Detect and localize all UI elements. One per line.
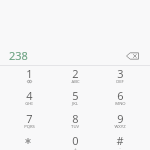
staticText: 3: [117, 66, 124, 81]
button[interactable]: 9: [97, 111, 143, 134]
staticText: DEF: [116, 79, 124, 85]
staticText: JKL: [72, 101, 78, 107]
button[interactable]: 2: [52, 66, 98, 89]
button[interactable]: 8: [52, 111, 98, 134]
button[interactable]: 7: [6, 111, 52, 134]
staticText: 5: [72, 88, 79, 103]
staticText: 8: [72, 111, 79, 126]
staticText: +: [74, 146, 77, 150]
staticText: 4: [26, 88, 33, 103]
staticText: ;: [119, 146, 121, 150]
staticText: 0: [72, 133, 79, 148]
staticText: #: [116, 133, 124, 148]
button[interactable]: #: [97, 133, 143, 150]
staticText: PQRS: [24, 124, 35, 130]
button[interactable]: 1: [6, 66, 52, 89]
staticText: GHI: [25, 101, 33, 107]
button[interactable]: 5: [52, 88, 98, 111]
button[interactable]: Backspace: [124, 48, 140, 64]
staticText: 238: [9, 48, 28, 63]
staticText: 2: [72, 66, 79, 81]
staticText: 1: [26, 66, 33, 81]
button[interactable]: 6: [97, 88, 143, 111]
staticText: 9: [117, 111, 124, 126]
button[interactable]: 4: [6, 88, 52, 111]
button[interactable]: ,: [6, 133, 52, 150]
staticText: 7: [26, 111, 33, 126]
button[interactable]: 0: [52, 133, 98, 150]
button[interactable]: 3: [97, 66, 143, 89]
staticText: TUV: [71, 124, 79, 130]
staticText: WXYZ: [114, 124, 126, 130]
staticText: MNO: [115, 101, 126, 107]
staticText: 6: [117, 88, 124, 103]
staticText: ABC: [71, 79, 80, 85]
